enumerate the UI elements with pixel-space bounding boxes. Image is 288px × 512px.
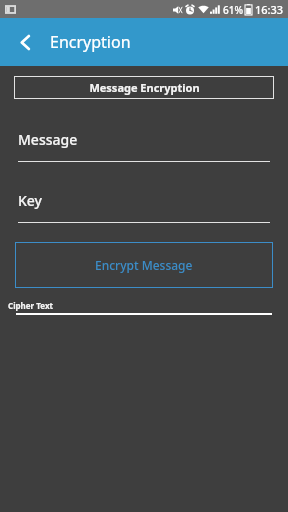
staticText: Encrypt Message [95, 257, 193, 273]
staticText: Message [18, 130, 78, 149]
staticText: 16:33 [255, 2, 284, 17]
staticText: Message Encryption [89, 80, 200, 95]
button[interactable]: Back [8, 25, 42, 59]
staticText: Cipher Text [8, 300, 53, 311]
button[interactable]: Message Encryption [14, 76, 274, 99]
staticText: 61% [223, 3, 243, 17]
staticText: Encryption [50, 31, 131, 53]
button[interactable]: Encrypt Message [15, 242, 273, 288]
staticText: Key [18, 191, 42, 210]
